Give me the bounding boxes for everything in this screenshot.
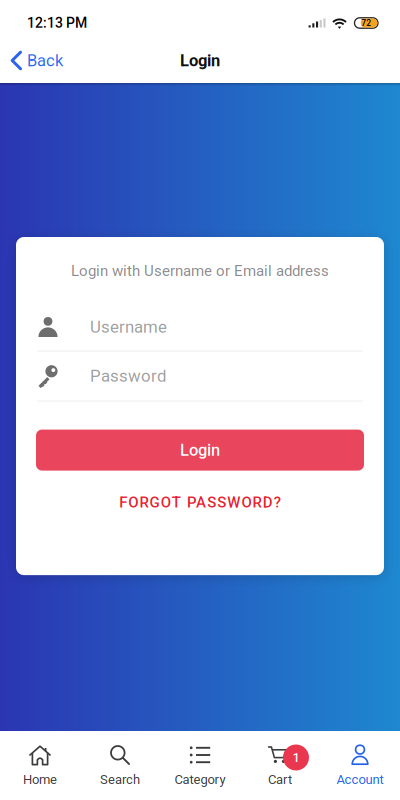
- button[interactable]: Account: [320, 731, 400, 800]
- staticText: FORGOT PASSWORD?: [119, 494, 281, 511]
- staticText: Search: [100, 772, 140, 787]
- button[interactable]: Login: [36, 430, 364, 471]
- staticText: Login: [180, 51, 220, 70]
- staticText: Login: [180, 440, 220, 460]
- button[interactable]: Category: [160, 731, 240, 800]
- button[interactable]: Cart: [240, 731, 320, 800]
- staticText: Category: [174, 772, 225, 787]
- button[interactable]: Back: [0, 43, 63, 78]
- button[interactable]: Home: [0, 731, 80, 800]
- staticText: Cart: [268, 772, 292, 787]
- staticText: Login with Username or Email address: [71, 262, 329, 280]
- button[interactable]: Username: [16, 315, 384, 340]
- staticText: Account: [336, 772, 383, 787]
- staticText: Password: [90, 366, 166, 386]
- staticText: 12:13 PM: [27, 15, 87, 31]
- staticText: Username: [90, 317, 167, 337]
- button[interactable]: Password: [16, 364, 384, 389]
- button[interactable]: FORGOT PASSWORD?: [119, 494, 281, 511]
- button[interactable]: Search: [80, 731, 160, 800]
- staticText: Home: [23, 772, 57, 787]
- staticText: 1: [292, 750, 299, 765]
- staticText: 72: [361, 18, 371, 28]
- staticText: Back: [27, 51, 63, 70]
